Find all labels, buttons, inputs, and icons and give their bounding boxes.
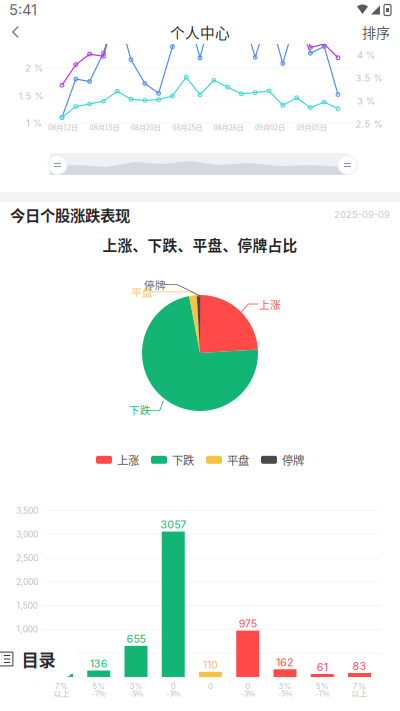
staticText: 3% bbox=[278, 681, 291, 691]
staticText: 0 bbox=[245, 681, 250, 691]
staticText: 08月15日 bbox=[89, 122, 119, 132]
button[interactable]: 目录 bbox=[0, 638, 77, 680]
staticText: 162 bbox=[276, 656, 294, 669]
staticText: 2025-09-09 bbox=[334, 209, 390, 220]
staticText: 3.5 % bbox=[355, 72, 382, 84]
staticText: 1,000 bbox=[16, 624, 37, 635]
staticText: 停牌 bbox=[282, 452, 304, 468]
staticText: 1 % bbox=[26, 117, 42, 129]
staticText: 08月25日 bbox=[172, 122, 202, 132]
staticText: -3% bbox=[166, 687, 180, 699]
staticText: -5% bbox=[129, 687, 143, 699]
staticText: 1.5 % bbox=[18, 90, 43, 102]
staticText: 61 bbox=[317, 660, 328, 673]
staticText: 4 % bbox=[357, 49, 375, 61]
staticText: 今日个股涨跌表现 bbox=[10, 203, 130, 226]
staticText: 平盘 bbox=[227, 452, 249, 468]
staticText: 个人中心 bbox=[170, 21, 230, 43]
staticText: 3,000 bbox=[16, 529, 38, 539]
staticText: 上涨、下跌、平盘、停牌占比 bbox=[102, 234, 297, 255]
staticText: -5% bbox=[278, 687, 292, 699]
staticText: 2,500 bbox=[16, 553, 38, 563]
staticText: 停牌 bbox=[144, 277, 166, 292]
staticText: 3057 bbox=[160, 518, 186, 531]
staticText: 655 bbox=[126, 632, 145, 645]
staticText: 7% bbox=[55, 681, 68, 691]
staticText: 08月20日 bbox=[131, 122, 161, 132]
staticText: 2.5 % bbox=[355, 118, 382, 130]
staticText: -7% bbox=[92, 687, 106, 699]
button[interactable]: 调整时间范围 bbox=[337, 154, 358, 175]
staticText: 下跌 bbox=[129, 402, 151, 417]
staticText: 36 bbox=[54, 660, 68, 673]
staticText: 08月28日 bbox=[214, 122, 244, 132]
staticText: 0 bbox=[171, 681, 176, 691]
staticText: -3% bbox=[241, 687, 255, 699]
staticText: 以上 bbox=[351, 687, 367, 699]
button[interactable]: 排序 bbox=[352, 20, 400, 44]
staticText: 975 bbox=[239, 617, 257, 630]
staticText: 5% bbox=[316, 681, 329, 691]
button[interactable]: 调整时间范围 bbox=[47, 154, 68, 175]
staticText: 0 bbox=[208, 681, 213, 691]
staticText: 110 bbox=[203, 658, 218, 671]
staticText: 上涨 bbox=[117, 452, 139, 468]
staticText: 5% bbox=[92, 681, 105, 691]
staticText: -7% bbox=[315, 687, 329, 699]
staticText: 5:41 bbox=[9, 1, 37, 19]
staticText: 目录 bbox=[21, 646, 55, 672]
staticText: 3,500 bbox=[16, 505, 38, 516]
staticText: 08月12日 bbox=[48, 122, 78, 132]
staticText: 1,500 bbox=[16, 600, 37, 611]
staticText: 平盘 bbox=[131, 284, 153, 300]
staticText: 83 bbox=[352, 660, 366, 672]
staticText: 2 % bbox=[25, 62, 43, 74]
staticText: 3 % bbox=[357, 95, 375, 107]
staticText: 排序 bbox=[362, 22, 390, 42]
staticText: 136 bbox=[90, 657, 108, 670]
button[interactable]: 返回 bbox=[0, 20, 31, 44]
staticText: 以上 bbox=[53, 687, 69, 699]
staticText: 2,000 bbox=[16, 577, 38, 587]
staticText: 09月05日 bbox=[296, 122, 326, 132]
staticText: 上涨 bbox=[259, 296, 281, 312]
staticText: 7% bbox=[353, 681, 366, 691]
staticText: 3% bbox=[129, 681, 142, 691]
staticText: 下跌 bbox=[172, 452, 194, 468]
staticText: 09月02日 bbox=[255, 122, 285, 132]
